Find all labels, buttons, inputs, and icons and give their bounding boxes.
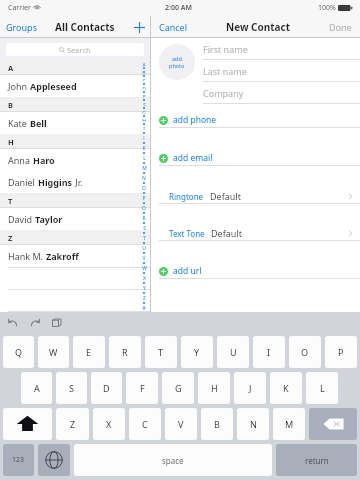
button[interactable]: X [93,408,125,440]
button[interactable]: add phone [151,112,360,128]
button[interactable]: Ringtone [151,188,360,204]
button[interactable]: return [276,444,357,476]
button[interactable]: First name [203,38,360,60]
button[interactable]: Y [181,336,213,368]
button[interactable]: Company [203,82,360,104]
button[interactable]: I [253,336,285,368]
staticText: Ringtone [169,191,204,202]
button[interactable]: W [38,336,69,368]
staticText: Last name [203,65,247,77]
staticText: E [143,94,146,98]
staticText: New Contact [226,20,291,34]
staticText: Jr. [73,176,83,188]
staticText: I [267,346,271,358]
button[interactable]: J [234,372,266,404]
button[interactable]: Undo [6,316,20,330]
button[interactable]: L [306,372,338,404]
button[interactable]: O [289,336,321,368]
staticText: J [143,135,145,140]
button[interactable]: Daniel [0,171,150,193]
staticText: H [211,382,218,394]
staticText: O [142,185,146,190]
button[interactable]: Add contact [128,16,150,38]
button[interactable]: D [91,372,122,404]
button[interactable]: Done [321,21,360,33]
staticText: N [142,175,146,180]
button[interactable]: V [165,408,197,440]
staticText: M [142,165,147,170]
button[interactable]: Cancel [151,21,196,33]
staticText: B [142,70,146,74]
button[interactable]: Z [56,408,89,440]
staticText: D [103,382,110,394]
button[interactable]: Hank M. [0,245,150,267]
button[interactable]: H [198,372,230,404]
button[interactable]: Groups [0,21,43,33]
button[interactable]: Shift [3,408,52,440]
button[interactable]: M [273,408,305,440]
button[interactable]: Last name [203,60,360,82]
button[interactable]: add url [151,263,360,279]
button[interactable]: space [74,444,272,476]
button[interactable]: John [0,75,150,97]
staticText: Q [142,205,146,210]
button[interactable]: F [126,372,158,404]
staticText: # [142,305,146,310]
staticText: First name [203,43,248,55]
staticText: Anna [8,154,33,166]
button[interactable]: Globe [38,444,70,476]
button[interactable]: K [270,372,302,404]
staticText: T [8,196,13,206]
button[interactable]: David [0,208,150,230]
staticText: J [249,382,252,394]
button[interactable]: Text Tone [151,225,360,241]
button[interactable]: U [217,336,249,368]
button[interactable]: R [109,336,141,368]
staticText: R [142,215,146,220]
staticText: X [143,275,146,280]
button[interactable]: Search [6,43,144,56]
staticText: A [142,62,146,66]
button[interactable]: E [73,336,105,368]
button[interactable]: Backspace [309,408,357,440]
button[interactable]: A [21,372,52,404]
staticText: H [142,118,146,122]
staticText: Higgins [38,176,73,188]
button[interactable]: T [145,336,177,368]
button[interactable]: Kate [0,112,150,134]
button[interactable]: C [129,408,161,440]
staticText: Daniel [8,176,38,188]
button[interactable]: add email [151,150,360,166]
button[interactable]: Redo [28,316,42,330]
staticText: W [49,346,58,358]
staticText: O [301,346,309,358]
staticText: T [158,346,164,358]
staticText: 100% [318,3,336,13]
staticText: 123 [12,455,25,465]
staticText: K [142,145,146,150]
staticText: Text Tone [169,228,205,239]
staticText: Haro [33,154,55,166]
button[interactable]: Anna [0,149,150,171]
staticText: R [122,346,128,358]
button[interactable]: Paste [50,316,64,330]
button[interactable]: G [162,372,194,404]
staticText: V [142,255,146,260]
staticText: Y [143,285,146,290]
button[interactable]: B [201,408,233,440]
button[interactable]: S [56,372,87,404]
staticText: F [140,382,145,394]
staticText: space [162,455,184,466]
staticText: S [143,225,146,230]
button[interactable]: N [237,408,269,440]
staticText: Search [67,45,91,55]
staticText: E [86,346,92,358]
staticText: Groups [6,21,37,33]
button[interactable]: P [325,336,357,368]
staticText: add phone [173,114,217,126]
staticText: Zakroff [46,250,79,262]
staticText: Z [8,233,13,243]
button[interactable]: Q [3,336,34,368]
button[interactable]: Numbers [3,444,34,476]
button[interactable]: add [159,44,195,80]
